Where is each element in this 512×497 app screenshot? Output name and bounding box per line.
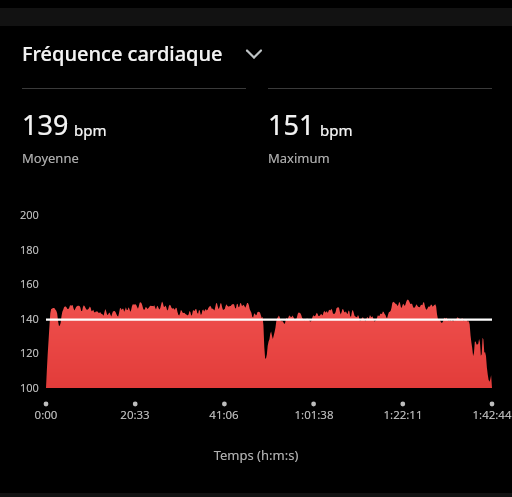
button[interactable]: 139 bbox=[22, 88, 246, 167]
staticText: 200 bbox=[20, 207, 39, 222]
button[interactable]: Fréquence cardiaque bbox=[22, 40, 265, 67]
staticText: 1:42:44 bbox=[457, 407, 512, 423]
button[interactable]: 151 bbox=[268, 88, 492, 167]
staticText: 160 bbox=[20, 276, 39, 291]
staticText: Temps (h:m:s) bbox=[0, 446, 512, 464]
staticText: Fréquence cardiaque bbox=[22, 40, 223, 67]
other: Développer bbox=[243, 43, 265, 65]
staticText: Maximum bbox=[268, 149, 330, 167]
staticText: bpm bbox=[320, 120, 353, 140]
staticText: 120 bbox=[20, 345, 39, 360]
staticText: 1:22:11 bbox=[368, 407, 438, 423]
staticText: 100 bbox=[20, 380, 39, 395]
staticText: 0:00 bbox=[11, 407, 81, 423]
staticText: Moyenne bbox=[22, 149, 79, 167]
staticText: 140 bbox=[20, 311, 39, 326]
staticText: 151 bbox=[268, 106, 315, 143]
staticText: 180 bbox=[20, 242, 39, 257]
staticText: bpm bbox=[74, 120, 107, 140]
staticText: 41:06 bbox=[189, 407, 259, 423]
staticText: 139 bbox=[22, 106, 69, 143]
staticText: 20:33 bbox=[100, 407, 170, 423]
staticText: 1:01:38 bbox=[279, 407, 349, 423]
